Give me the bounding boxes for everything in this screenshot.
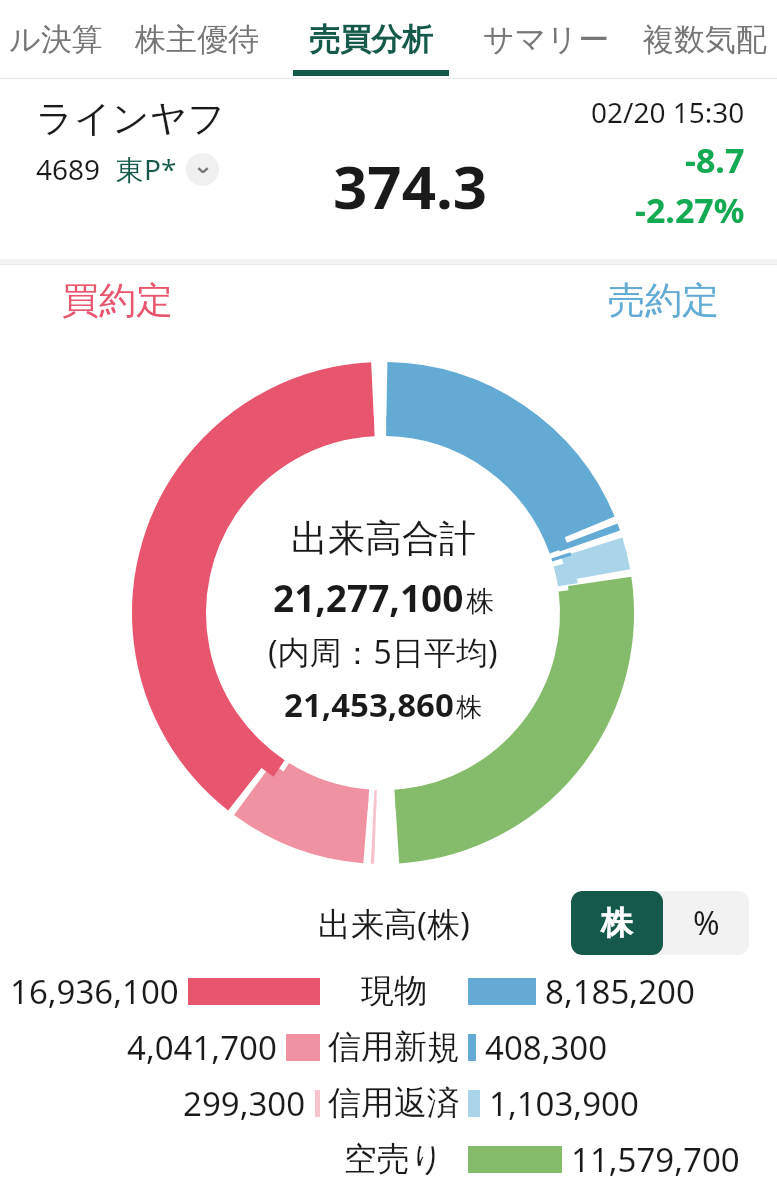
staticText: 株 <box>456 691 482 724</box>
button[interactable]: サマリー <box>460 0 632 78</box>
staticText: 現物 <box>361 970 427 1012</box>
button[interactable]: 4,041,700 <box>0 1019 777 1075</box>
staticText: 4689 <box>36 150 101 188</box>
staticText: ル決算 <box>9 20 103 59</box>
staticText: ラインヤフ <box>36 95 226 142</box>
staticText: -8.7 <box>685 137 745 183</box>
staticText: 16,936,100 <box>10 969 179 1014</box>
button[interactable]: 299,300 <box>0 1075 777 1131</box>
staticText: 複数気配 <box>643 20 767 59</box>
button[interactable]: 売買分析 <box>282 0 460 78</box>
staticText: 374.3 <box>333 145 488 227</box>
staticText: 買約定 <box>62 277 173 324</box>
staticText: 東P* <box>116 150 177 188</box>
staticText: 299,300 <box>183 1081 306 1126</box>
button[interactable]: ル決算 <box>0 0 112 78</box>
staticText: 21,277,100 <box>273 572 464 622</box>
staticText: 02/20 15:30 <box>591 93 745 131</box>
staticText: 株主優待 <box>135 20 259 59</box>
button[interactable]: 空売り <box>0 1131 777 1187</box>
staticText: (内周：5日平均) <box>268 630 498 674</box>
staticText: 売買分析 <box>309 20 433 59</box>
button[interactable]: % <box>663 891 749 955</box>
staticText: 信用新規 <box>328 1026 460 1068</box>
staticText: 出来高(株) <box>318 901 470 946</box>
staticText: 408,300 <box>485 1025 608 1070</box>
staticText: 空売り <box>344 1138 444 1180</box>
staticText: 8,185,200 <box>545 969 695 1014</box>
button[interactable]: 株 <box>571 891 663 955</box>
staticText: 11,579,700 <box>571 1137 740 1182</box>
button[interactable]: Show market detail <box>186 153 219 186</box>
staticText: 株 <box>601 903 633 943</box>
staticText: 1,103,900 <box>489 1081 639 1126</box>
staticText: 4,041,700 <box>127 1025 277 1070</box>
button[interactable]: 16,936,100 <box>0 963 777 1019</box>
button[interactable]: 株主優待 <box>112 0 282 78</box>
staticText: 売約定 <box>608 277 719 324</box>
staticText: 信用返済 <box>328 1082 460 1124</box>
staticText: サマリー <box>483 20 610 59</box>
staticText: % <box>693 901 720 945</box>
staticText: 出来高合計 <box>291 515 476 562</box>
staticText: 株 <box>466 584 494 619</box>
button[interactable]: 複数気配 <box>632 0 777 78</box>
staticText: -2.27% <box>635 187 745 233</box>
staticText: 21,453,860 <box>284 682 454 727</box>
